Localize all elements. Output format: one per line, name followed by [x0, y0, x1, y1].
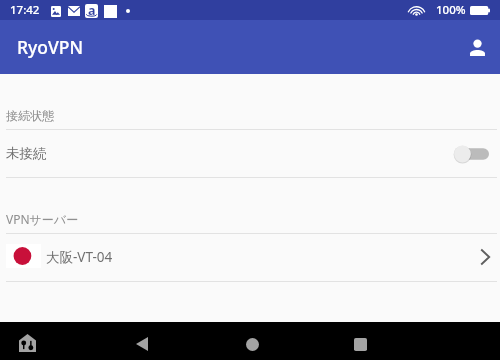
button[interactable]: Home	[235, 327, 269, 360]
button[interactable]: 大阪-VT-04	[0, 234, 500, 281]
staticText: 17:42	[10, 2, 40, 18]
staticText: 未接続	[6, 145, 47, 162]
staticText: 100%	[436, 2, 466, 18]
button[interactable]: VPN connection toggle, off	[454, 144, 489, 164]
staticText: VPNサーバー	[6, 211, 79, 227]
button[interactable]: Account	[457, 27, 497, 67]
staticText: 大阪-VT-04	[46, 248, 113, 266]
button[interactable]: Recent apps	[343, 327, 377, 360]
button[interactable]: Back	[125, 327, 159, 360]
button[interactable]: Smart home controls	[12, 328, 42, 358]
button[interactable]: 未接続	[0, 130, 500, 177]
staticText: 接続状態	[6, 108, 54, 123]
staticText: RyoVPN	[17, 35, 84, 59]
staticText: a	[88, 4, 96, 16]
